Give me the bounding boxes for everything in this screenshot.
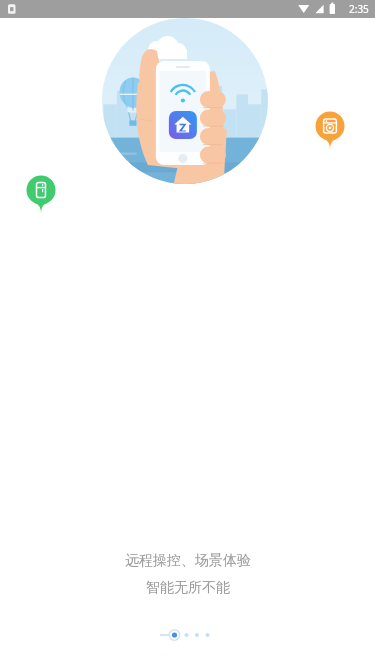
button[interactable]: Washing machine device <box>313 109 347 143</box>
staticText: 2:35 <box>349 2 369 16</box>
staticText: 远程操控、场景体验 <box>125 552 251 570</box>
button[interactable]: Refrigerator device <box>24 173 58 207</box>
staticText: 智能无所不能 <box>146 579 230 597</box>
